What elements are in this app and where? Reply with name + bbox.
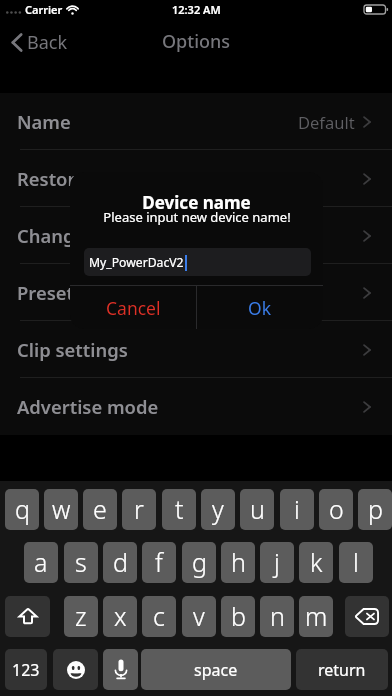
button[interactable]: Restore settings xyxy=(0,150,392,207)
staticText: My_PowerDacV2 xyxy=(89,254,184,271)
button[interactable]: Cancel xyxy=(70,286,196,329)
staticText: n xyxy=(270,599,285,633)
staticText: Advertise mode xyxy=(17,394,159,419)
button[interactable]: Name xyxy=(0,93,392,150)
button[interactable]: Shift xyxy=(5,596,50,637)
button[interactable]: n xyxy=(260,596,294,637)
button[interactable]: b xyxy=(221,596,255,637)
button[interactable]: m xyxy=(299,596,333,637)
button[interactable]: t xyxy=(162,489,196,530)
staticText: Please input new device name! xyxy=(103,208,291,226)
button[interactable]: space xyxy=(141,649,291,690)
button[interactable]: Back xyxy=(8,27,74,58)
staticText: s xyxy=(75,545,87,579)
button[interactable]: u xyxy=(240,489,274,530)
staticText: g xyxy=(192,545,207,579)
staticText: Carrier xyxy=(25,2,63,17)
button[interactable]: Preset xyxy=(0,264,392,321)
staticText: Preset xyxy=(17,280,74,305)
staticText: b xyxy=(231,599,246,633)
button[interactable]: x xyxy=(103,596,137,637)
staticText: Ok xyxy=(248,296,272,320)
staticText: r xyxy=(134,492,144,526)
staticText: f xyxy=(155,545,163,579)
staticText: t xyxy=(175,492,184,526)
button[interactable]: e xyxy=(83,489,117,530)
staticText: a xyxy=(34,545,48,579)
button[interactable]: Dictation xyxy=(103,649,138,690)
button[interactable]: i xyxy=(280,489,314,530)
button[interactable]: Backspace xyxy=(345,596,389,637)
staticText: e xyxy=(93,492,107,526)
button[interactable]: return xyxy=(296,649,388,690)
staticText: Back xyxy=(27,30,68,55)
button[interactable]: o xyxy=(319,489,353,530)
button[interactable]: d xyxy=(103,542,137,583)
button[interactable]: j xyxy=(260,542,294,583)
button[interactable]: h xyxy=(221,542,255,583)
button[interactable]: a xyxy=(24,542,58,583)
button[interactable]: Change password xyxy=(0,207,392,264)
staticText: y xyxy=(212,492,224,526)
button[interactable]: z xyxy=(64,596,98,637)
staticText: Change password xyxy=(17,223,177,248)
staticText: o xyxy=(329,492,344,526)
staticText: Clip settings xyxy=(17,337,128,362)
button[interactable]: s xyxy=(64,542,98,583)
staticText: v xyxy=(193,599,205,633)
staticText: l xyxy=(353,545,359,579)
staticText: space xyxy=(194,659,238,681)
button[interactable]: r xyxy=(122,489,156,530)
staticText: c xyxy=(153,599,165,633)
staticText: 123 xyxy=(12,659,40,681)
staticText: Restore settings xyxy=(17,166,163,191)
button[interactable]: g xyxy=(182,542,216,583)
button[interactable]: 123 xyxy=(5,649,47,690)
staticText: m xyxy=(305,599,328,633)
staticText: u xyxy=(250,492,265,526)
staticText: Cancel xyxy=(106,296,161,320)
staticText: q xyxy=(15,492,30,526)
staticText: Options xyxy=(162,29,231,54)
button[interactable]: k xyxy=(299,542,333,583)
button[interactable]: c xyxy=(142,596,176,637)
button[interactable]: p xyxy=(358,489,392,530)
staticText: j xyxy=(274,545,280,579)
staticText: Device name xyxy=(142,191,251,214)
button[interactable]: l xyxy=(339,542,373,583)
staticText: k xyxy=(310,545,323,579)
staticText: d xyxy=(113,545,128,579)
staticText: return xyxy=(318,659,366,681)
button[interactable]: Advertise mode xyxy=(0,378,392,435)
staticText: i xyxy=(294,492,300,526)
staticText: w xyxy=(52,492,71,526)
button[interactable]: y xyxy=(201,489,235,530)
staticText: p xyxy=(368,492,383,526)
button[interactable]: Ok xyxy=(197,286,323,329)
staticText: Name xyxy=(17,109,71,134)
button[interactable]: v xyxy=(182,596,216,637)
button[interactable]: w xyxy=(44,489,78,530)
button[interactable]: q xyxy=(5,489,39,530)
staticText: Default xyxy=(298,111,355,133)
staticText: 12:32 AM xyxy=(172,2,221,17)
button[interactable]: f xyxy=(142,542,176,583)
staticText: h xyxy=(231,545,246,579)
staticText: z xyxy=(75,599,87,633)
button[interactable]: Emoji xyxy=(53,649,98,690)
staticText: x xyxy=(114,599,127,633)
button[interactable]: Clip settings xyxy=(0,321,392,378)
